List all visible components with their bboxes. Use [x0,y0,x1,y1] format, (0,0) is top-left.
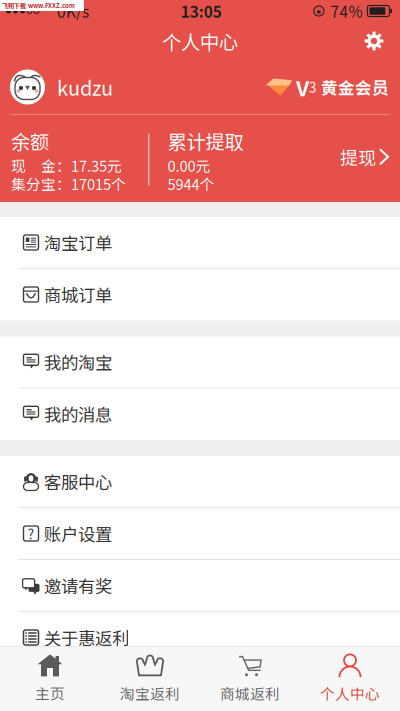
button[interactable]: 设置 [355,22,393,60]
staticText: 商城返利 [220,682,280,704]
staticText: 我的淘宝 [44,349,112,375]
button[interactable]: 客服中心 [0,456,400,508]
button[interactable]: 邀请有奖 [0,560,400,612]
button[interactable]: 我的消息 [0,388,400,440]
staticText: 提现 [340,144,376,170]
button[interactable]: 关于惠返利 [0,612,400,663]
staticText: ? [27,523,34,544]
staticText: 淘宝订单 [44,230,112,255]
button[interactable]: 个人中心 [300,646,400,711]
button[interactable]: ? [0,508,400,560]
staticText: 关于惠返利 [44,625,129,650]
button[interactable]: 商城返利 [200,646,300,711]
button[interactable]: 淘宝订单 [0,217,400,269]
button[interactable]: 淘宝返利 [100,646,200,711]
staticText: V [296,72,309,102]
staticText: kudzu [57,72,113,101]
staticText: 邀请有奖 [44,573,112,598]
staticText: 余额 [11,127,49,155]
staticText: 74% [330,0,362,22]
staticText: 我的消息 [44,401,112,427]
staticText: 黄金会员 [321,75,389,99]
staticText: 账户设置 [44,521,112,546]
button[interactable]: 我的淘宝 [0,336,400,388]
staticText: 主页 [35,682,65,704]
staticText: www.FXXZ.com [28,1,75,10]
button[interactable]: 提现 [340,127,400,170]
staticText: 客服中心 [44,469,112,494]
staticText: 0K/s [57,0,89,22]
staticText: 5944个 [167,173,214,194]
staticText: 13:05 [181,0,222,22]
button[interactable]: 主页 [0,646,100,711]
staticText: 商城订单 [44,282,112,307]
staticText: 飞翔下载 [2,1,26,10]
staticText: 个人中心 [162,27,238,55]
button[interactable]: 商城订单 [0,269,400,320]
staticText: 现 金：17.35元 [11,155,122,176]
staticText: 累计提取 [167,127,243,155]
staticText: 个人中心 [320,682,380,704]
staticText: 0.00元 [167,155,210,176]
staticText: 淘宝返利 [120,682,180,704]
staticText: 3 [309,77,316,97]
staticText: 集分宝：17015个 [11,173,126,194]
